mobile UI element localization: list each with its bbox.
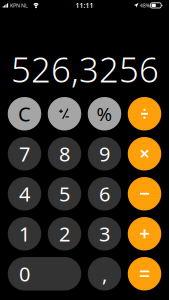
staticText: 8 xyxy=(59,140,70,167)
staticText: 2 xyxy=(59,220,70,247)
button[interactable]: 2 xyxy=(48,217,81,250)
button[interactable]: decimal separator xyxy=(88,257,121,290)
button[interactable]: equals xyxy=(128,257,161,290)
staticText: 11:11 xyxy=(75,1,93,10)
staticText: 0 xyxy=(19,260,30,287)
button[interactable]: 7 xyxy=(8,137,41,170)
button[interactable]: 4 xyxy=(8,177,41,210)
staticText: 48% xyxy=(140,2,150,9)
staticText: 3 xyxy=(99,220,110,247)
button[interactable]: multiply xyxy=(128,137,161,170)
button[interactable]: 8 xyxy=(48,137,81,170)
staticText: 6 xyxy=(99,180,110,207)
button[interactable]: divide xyxy=(128,97,161,130)
button[interactable]: minus xyxy=(128,177,161,210)
staticText: 526,3256 xyxy=(11,46,159,92)
button[interactable]: C xyxy=(8,97,41,130)
staticText: 9 xyxy=(99,140,110,167)
button[interactable]: plus xyxy=(128,217,161,250)
staticText: KPN NL xyxy=(10,2,28,9)
button[interactable]: 0 xyxy=(8,257,81,290)
staticText: 7 xyxy=(19,140,30,167)
button[interactable]: 9 xyxy=(88,137,121,170)
button[interactable]: % xyxy=(88,97,121,130)
staticText: % xyxy=(96,101,112,126)
staticText: 4 xyxy=(19,180,30,207)
staticText: 5 xyxy=(59,180,70,207)
staticText: , xyxy=(102,260,107,287)
staticText: C xyxy=(18,100,31,127)
staticText: 1 xyxy=(19,220,30,247)
button[interactable]: 3 xyxy=(88,217,121,250)
button[interactable]: plus minus xyxy=(48,97,81,130)
button[interactable]: 1 xyxy=(8,217,41,250)
button[interactable]: 6 xyxy=(88,177,121,210)
button[interactable]: 5 xyxy=(48,177,81,210)
